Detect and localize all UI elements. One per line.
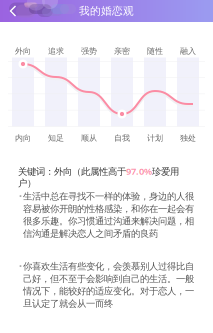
staticText: 关键词：外向（此属性高于	[18, 166, 126, 177]
staticText: 亲密	[114, 46, 130, 56]
staticText: 内向	[15, 133, 31, 143]
staticText: 顺从	[81, 133, 97, 143]
staticText: 外向	[15, 46, 31, 56]
staticText: 融入	[180, 46, 196, 56]
staticText: 随性	[147, 46, 163, 56]
staticText: 我的婚恋观	[79, 4, 134, 17]
staticText: 独处	[180, 133, 196, 143]
staticText: 生活中总在寻找不一样的体验，身边的人很 容易被你开朗的性格感染，和你在一起会有 …	[23, 191, 194, 239]
staticText: 追求	[48, 46, 64, 56]
staticText: 户）	[18, 177, 36, 189]
staticText: 知足	[48, 133, 64, 143]
staticText: 自我	[114, 133, 130, 143]
staticText: 你喜欢生活有些变化，会羡慕别人过得比自 己好，但不至于会影响到自己的生活。一般 …	[23, 261, 194, 309]
staticText: 强势	[81, 46, 97, 56]
button[interactable]: Back	[3, 0, 22, 23]
staticText: 97.0%	[126, 165, 152, 177]
staticText: 计划	[147, 133, 163, 143]
staticText: 珍爱用	[152, 166, 179, 177]
